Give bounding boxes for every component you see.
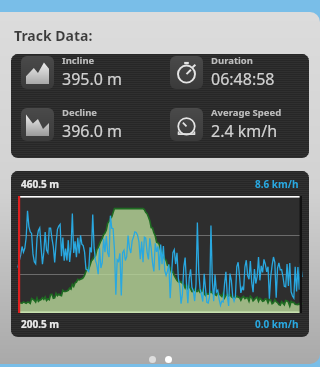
button[interactable]: Duration bbox=[170, 54, 309, 90]
button[interactable]: Page indicator bbox=[165, 356, 172, 363]
staticText: Average Speed bbox=[211, 106, 282, 119]
staticText: 460.5 m bbox=[21, 177, 60, 191]
staticText: Track Data: bbox=[14, 26, 93, 45]
staticText: 2.4 km/h bbox=[211, 120, 278, 142]
staticText: Decline bbox=[62, 106, 98, 119]
staticText: 200.5 m bbox=[21, 317, 60, 331]
staticText: 0.0 km/h bbox=[255, 317, 299, 331]
button[interactable]: Page indicator bbox=[149, 356, 156, 363]
button[interactable]: Average Speed bbox=[170, 106, 309, 142]
staticText: 06:48:58 bbox=[211, 68, 275, 90]
staticText: 8.6 km/h bbox=[255, 177, 299, 191]
button[interactable]: Incline bbox=[21, 54, 160, 90]
staticText: 395.0 m bbox=[62, 68, 123, 90]
staticText: 396.0 m bbox=[62, 120, 123, 142]
button[interactable]: 460.5 m bbox=[11, 171, 309, 337]
button[interactable]: Decline bbox=[21, 106, 160, 142]
staticText: Duration bbox=[211, 54, 253, 67]
staticText: Incline bbox=[62, 54, 95, 67]
